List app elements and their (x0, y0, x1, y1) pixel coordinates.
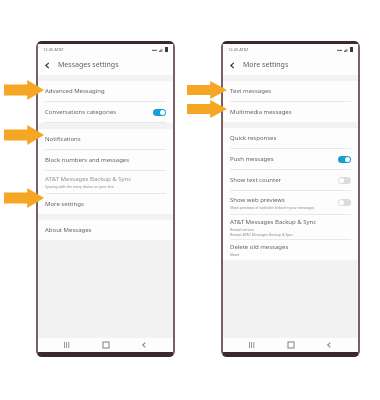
button[interactable]: Notifications (38, 129, 173, 149)
button[interactable]: Multimedia messages (223, 102, 358, 122)
button[interactable]: Show web previews (223, 191, 358, 214)
staticText: Never (230, 252, 240, 257)
button[interactable]: Delete old messages (223, 240, 358, 260)
button[interactable]: Show text counter (223, 170, 358, 190)
staticText: Delete old messages (230, 243, 289, 251)
staticText: Show web previews (230, 196, 285, 204)
button[interactable]: On (153, 109, 166, 116)
button[interactable]: Text messages (223, 81, 358, 101)
button[interactable]: Back (38, 56, 56, 74)
button[interactable]: Back (320, 338, 338, 352)
staticText: About Messages (45, 226, 92, 234)
button[interactable]: Recents (243, 338, 261, 352)
button[interactable]: Back (223, 56, 241, 74)
staticText: Messages settings (58, 60, 119, 70)
staticText: Text messages (230, 87, 272, 95)
button[interactable]: Back (135, 338, 153, 352)
button[interactable]: Home (97, 338, 115, 352)
button[interactable]: More settings (38, 194, 173, 214)
staticText: Block numbers and messages (45, 156, 130, 164)
staticText: AT&T Messages Backup & Sync (230, 218, 317, 226)
staticText: Conversations categories (45, 108, 117, 116)
button[interactable]: Conversations categories (38, 102, 173, 122)
staticText: Multimedia messages (230, 108, 292, 116)
staticText: Push messages (230, 155, 274, 163)
button[interactable]: Quick responses (223, 128, 358, 148)
staticText: Show text counter (230, 176, 282, 184)
button[interactable]: Home (282, 338, 300, 352)
staticText: Advanced Messaging (45, 87, 105, 95)
staticText: Quick responses (230, 134, 277, 142)
staticText: 12:45 AT&T (43, 47, 64, 52)
button[interactable]: Push messages (223, 149, 358, 169)
button[interactable]: Recents (58, 338, 76, 352)
button[interactable]: AT&T Messages Backup & Sync (38, 171, 173, 193)
button[interactable]: AT&T Messages Backup & Sync (223, 215, 358, 239)
staticText: Restart service Restart AT&T Messages Ba… (230, 227, 293, 237)
button[interactable]: Advanced Messaging (38, 81, 173, 101)
button[interactable]: Block numbers and messages (38, 150, 173, 170)
staticText: More settings (243, 60, 289, 70)
staticText: AT&T Messages Backup & Sync (45, 175, 132, 183)
staticText: More settings (45, 200, 84, 208)
staticText: 12:45 AT&T (228, 47, 249, 52)
staticText: Syncing with the every device on your li… (45, 184, 114, 189)
staticText: Notifications (45, 135, 81, 143)
staticText: Show previews of websites linked in your… (230, 205, 315, 210)
button[interactable]: About Messages (38, 220, 173, 240)
button[interactable]: On (338, 156, 351, 163)
button[interactable]: Off (338, 177, 351, 184)
button[interactable]: Off (338, 199, 351, 206)
